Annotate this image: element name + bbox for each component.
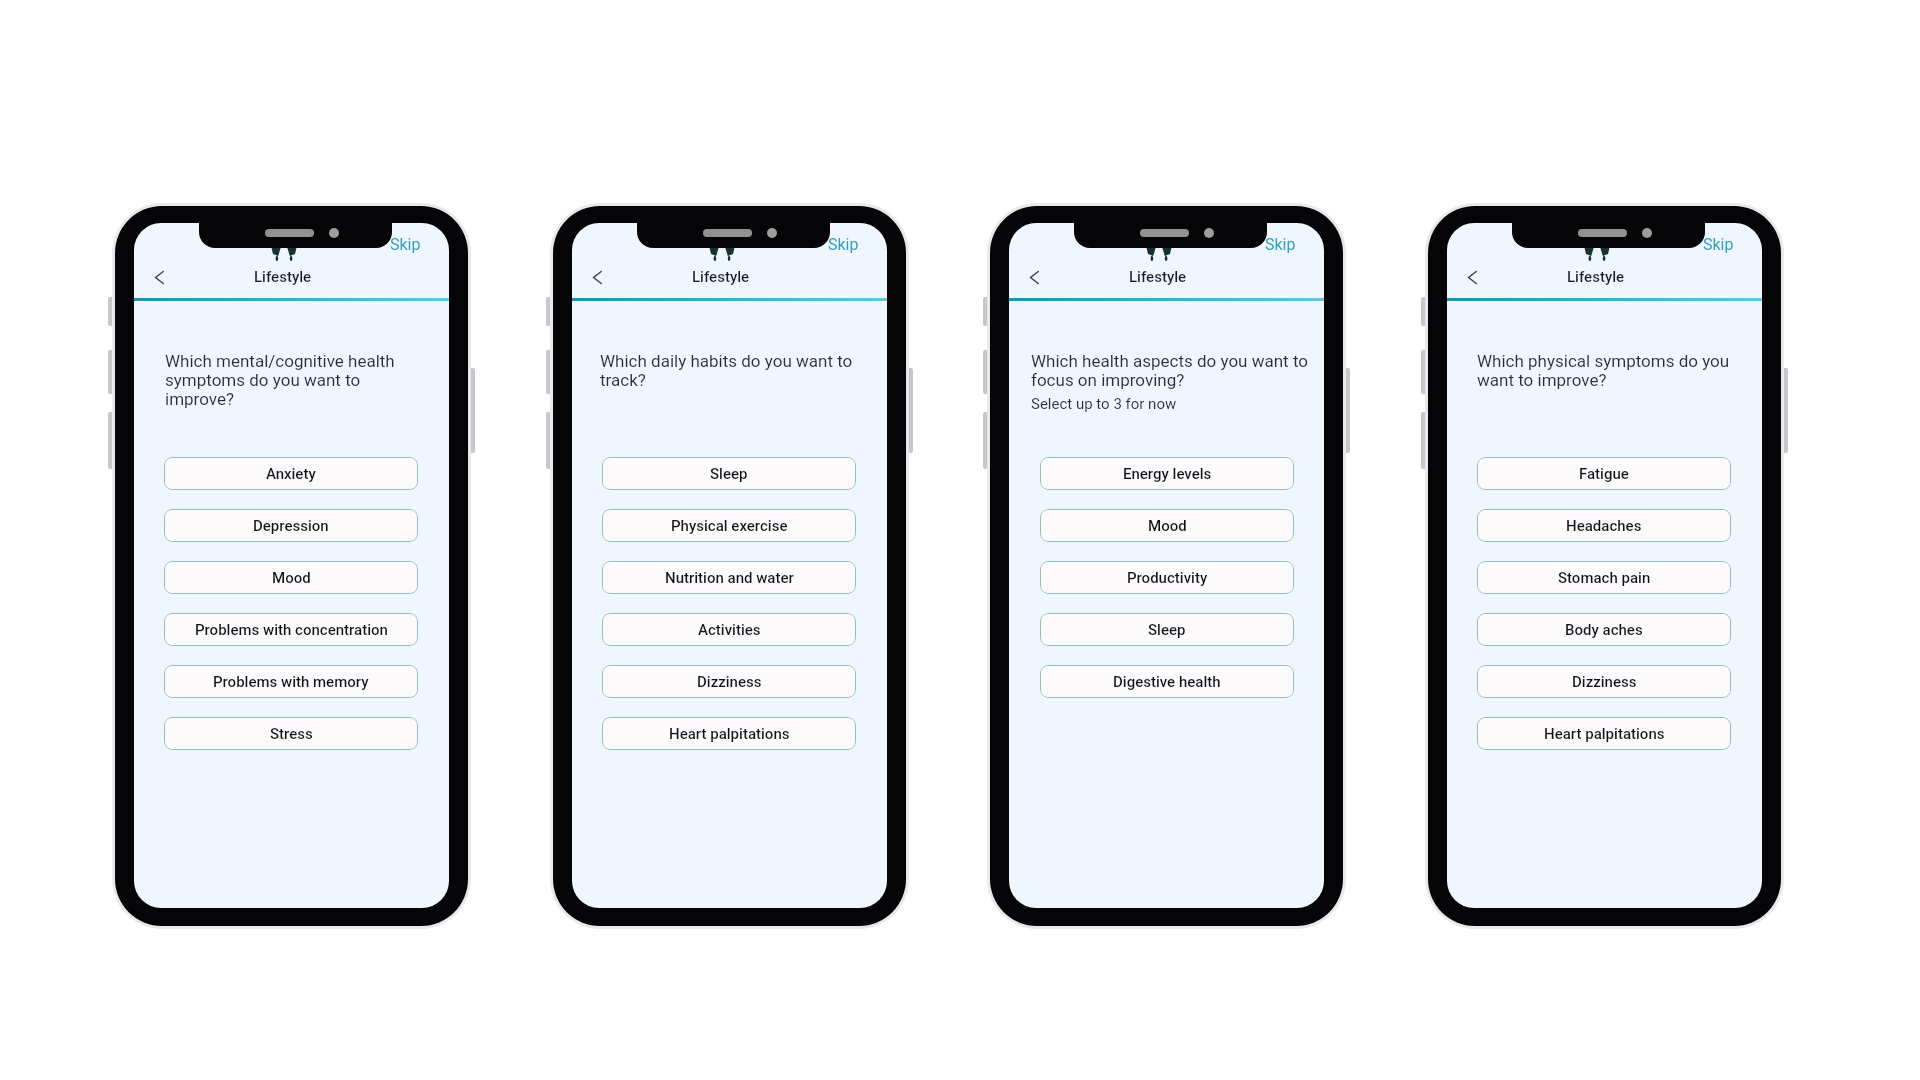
button[interactable]: Skip [1261, 229, 1300, 260]
staticText: Skip [828, 235, 859, 254]
staticText: Physical exercise [671, 517, 788, 535]
staticText: Lifestyle [692, 268, 750, 286]
button[interactable]: Problems with memory [164, 665, 418, 698]
button[interactable]: Heart palpitations [1477, 717, 1731, 750]
staticText: Lifestyle [1567, 268, 1625, 286]
staticText: Heart palpitations [1544, 725, 1665, 743]
button[interactable]: Physical exercise [602, 509, 856, 542]
button[interactable]: Digestive health [1040, 665, 1294, 698]
staticText: Anxiety [266, 465, 316, 483]
button[interactable]: Mood [164, 561, 418, 594]
button[interactable]: Energy levels [1040, 457, 1294, 490]
button[interactable]: Back [1459, 264, 1486, 291]
button[interactable]: Skip [824, 229, 863, 260]
staticText: Mood [272, 569, 311, 587]
staticText: Fatigue [1579, 465, 1629, 483]
button[interactable]: Nutrition and water [602, 561, 856, 594]
staticText: Problems with memory [213, 673, 369, 691]
staticText: Sleep [1148, 621, 1186, 639]
staticText: Skip [1265, 235, 1296, 254]
button[interactable]: Fatigue [1477, 457, 1731, 490]
button[interactable]: Depression [164, 509, 418, 542]
button[interactable]: Mood [1040, 509, 1294, 542]
staticText: Skip [1703, 235, 1734, 254]
staticText: Activities [698, 621, 761, 639]
button[interactable]: Sleep [1040, 613, 1294, 646]
staticText: Depression [253, 517, 329, 535]
staticText: Sleep [710, 465, 748, 483]
staticText: Headaches [1566, 517, 1642, 535]
button[interactable]: Body aches [1477, 613, 1731, 646]
button[interactable]: Dizziness [602, 665, 856, 698]
button[interactable]: Back [146, 264, 173, 291]
staticText: Which mental/cognitive health symptoms d… [165, 351, 399, 409]
staticText: Dizziness [697, 673, 762, 691]
staticText: Dizziness [1572, 673, 1637, 691]
button[interactable]: Stress [164, 717, 418, 750]
staticText: Mood [1148, 517, 1187, 535]
button[interactable]: Problems with concentration [164, 613, 418, 646]
staticText: Skip [390, 235, 421, 254]
staticText: Problems with concentration [195, 621, 388, 639]
button[interactable]: Headaches [1477, 509, 1731, 542]
staticText: Stomach pain [1558, 569, 1651, 587]
staticText: Which physical symptoms do you want to i… [1477, 351, 1735, 390]
button[interactable]: Anxiety [164, 457, 418, 490]
staticText: Which health aspects do you want to focu… [1031, 351, 1316, 390]
button[interactable]: Back [1021, 264, 1048, 291]
button[interactable]: Skip [386, 229, 425, 260]
staticText: Digestive health [1113, 673, 1221, 691]
staticText: Heart palpitations [669, 725, 790, 743]
staticText: Productivity [1127, 569, 1208, 587]
button[interactable]: Productivity [1040, 561, 1294, 594]
button[interactable]: Stomach pain [1477, 561, 1731, 594]
button[interactable]: Dizziness [1477, 665, 1731, 698]
staticText: Nutrition and water [665, 569, 794, 587]
button[interactable]: Activities [602, 613, 856, 646]
staticText: Stress [270, 725, 313, 743]
staticText: Which daily habits do you want to track? [600, 351, 862, 390]
staticText: Select up to 3 for now [1031, 395, 1177, 413]
staticText: Body aches [1565, 621, 1643, 639]
button[interactable]: Skip [1699, 229, 1738, 260]
button[interactable]: Heart palpitations [602, 717, 856, 750]
staticText: Energy levels [1123, 465, 1212, 483]
staticText: Lifestyle [1129, 268, 1187, 286]
button[interactable]: Sleep [602, 457, 856, 490]
button[interactable]: Back [584, 264, 611, 291]
staticText: Lifestyle [254, 268, 312, 286]
